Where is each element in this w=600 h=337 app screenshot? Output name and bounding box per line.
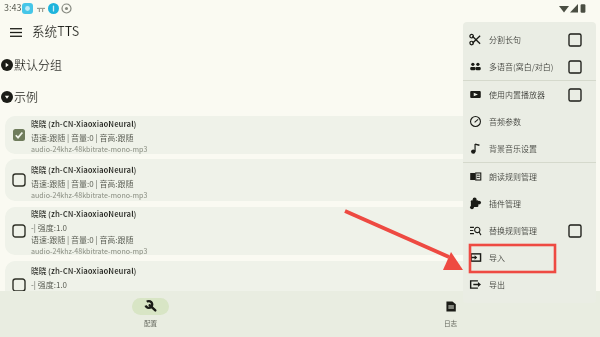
staticText: 晓晓 (zh-CN-XiaoxiaoNeural) <box>31 118 137 129</box>
staticText: audio-24khz-48kbitrate-mono-mp3 <box>31 246 148 255</box>
staticText: 语速:跟随 | 音量:0 | 音高:跟随 <box>31 132 134 144</box>
staticText: 配置 <box>144 318 158 328</box>
staticText: 使用内置播放器 <box>489 89 545 101</box>
button[interactable]: 使用内置播放器 <box>463 81 596 108</box>
staticText: 插件管理 <box>489 198 521 210</box>
button[interactable]: 多语音(窝白/对白) <box>463 53 596 80</box>
button[interactable]: 导入 <box>463 244 596 271</box>
staticText: 多语音(窝白/对白) <box>489 61 554 73</box>
staticText: audio-24khz-48kbitrate-mono-mp3 <box>31 190 148 200</box>
staticText: 替换规则管理 <box>489 225 537 237</box>
button[interactable]: Select voice <box>9 170 29 190</box>
button[interactable]: Select voice <box>5 207 595 255</box>
staticText: 分割长句 <box>489 34 521 46</box>
button[interactable]: 日志 <box>300 291 600 337</box>
button[interactable]: 朗读规则管理 <box>463 163 596 190</box>
staticText: -| 强度:1.0 <box>31 222 68 234</box>
button[interactable]: 分割长句 <box>463 26 596 53</box>
staticText: 导入 <box>489 252 505 264</box>
staticText: 晓晓 (zh-CN-XiaoxiaoNeural) <box>31 208 137 219</box>
staticText: 晓晓 (zh-CN-XiaoxiaoNeural) <box>31 164 137 175</box>
staticText: 朗读规则管理 <box>489 171 537 183</box>
staticText: -| 强度:1.0 <box>31 279 68 291</box>
button[interactable]: 背景音乐设置 <box>463 135 596 162</box>
button[interactable]: Select voice <box>5 261 595 309</box>
button[interactable]: 替换规则管理 <box>463 217 596 244</box>
staticText: 导出 <box>489 279 505 291</box>
button[interactable]: Select voice <box>9 125 29 145</box>
staticText: 系统TTS <box>32 21 80 39</box>
staticText: 示例 <box>14 88 39 105</box>
staticText: audio-24khz-48kbitrate-mono-mp3 <box>31 303 148 309</box>
staticText: 默认分组 <box>14 56 63 73</box>
staticText: 语速:跟随 | 音量:0 | 音高:跟随 <box>31 178 134 190</box>
staticText: 晓晓 (zh-CN-XiaoxiaoNeural) <box>31 265 137 276</box>
staticText: 语速:跟随 | 音量:0 | 音高:跟随 <box>31 234 134 246</box>
staticText: 3:43 <box>4 1 22 14</box>
button[interactable]: Select voice <box>5 159 595 201</box>
button[interactable]: 示例 <box>0 88 600 105</box>
button[interactable]: 默认分组 <box>0 56 600 73</box>
staticText: audio-24khz-48kbitrate-mono-mp3 <box>31 144 148 154</box>
button[interactable]: Select voice <box>9 221 29 241</box>
button[interactable]: 音频参数 <box>463 108 596 135</box>
button[interactable]: 配置 <box>0 291 300 337</box>
button[interactable]: Navigation menu <box>2 18 30 46</box>
staticText: 背景音乐设置 <box>489 143 537 155</box>
button[interactable]: Select voice <box>5 116 595 154</box>
staticText: 日志 <box>444 318 458 328</box>
button[interactable]: 插件管理 <box>463 190 596 217</box>
button[interactable]: Select voice <box>9 275 29 295</box>
staticText: 音频参数 <box>489 116 521 128</box>
button[interactable]: 导出 <box>463 271 596 298</box>
